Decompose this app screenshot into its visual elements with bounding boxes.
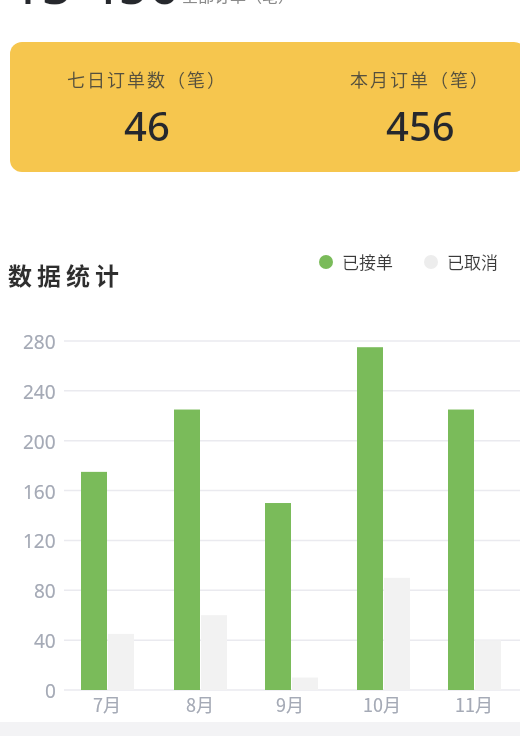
- staticText: 已接单: [342, 249, 393, 274]
- staticText: 160: [23, 479, 56, 503]
- staticText: 7月: [93, 691, 121, 717]
- button[interactable]: 七日订单数（笔）: [10, 42, 520, 172]
- staticText: 200: [23, 429, 56, 453]
- button[interactable]: 已取消: [424, 249, 498, 274]
- staticText: 120: [23, 528, 56, 552]
- staticText: 七日订单数（笔）: [67, 66, 227, 92]
- staticText: 80: [34, 578, 56, 602]
- staticText: 456: [386, 98, 455, 152]
- staticText: 已取消: [447, 249, 498, 274]
- staticText: 10月: [363, 691, 401, 717]
- staticText: 0: [45, 678, 56, 702]
- staticText: 13 456: [12, 0, 180, 19]
- staticText: 9月: [276, 691, 304, 717]
- staticText: 数据统计: [8, 257, 124, 292]
- staticText: 46: [124, 98, 170, 152]
- staticText: 全部订单（笔）: [182, 0, 295, 6]
- staticText: 280: [23, 329, 56, 353]
- staticText: 40: [34, 628, 56, 652]
- staticText: 11月: [455, 691, 493, 717]
- staticText: 240: [23, 379, 56, 403]
- button[interactable]: 已接单: [319, 249, 393, 274]
- staticText: 8月: [186, 691, 214, 717]
- staticText: 本月订单（笔）: [350, 66, 490, 92]
